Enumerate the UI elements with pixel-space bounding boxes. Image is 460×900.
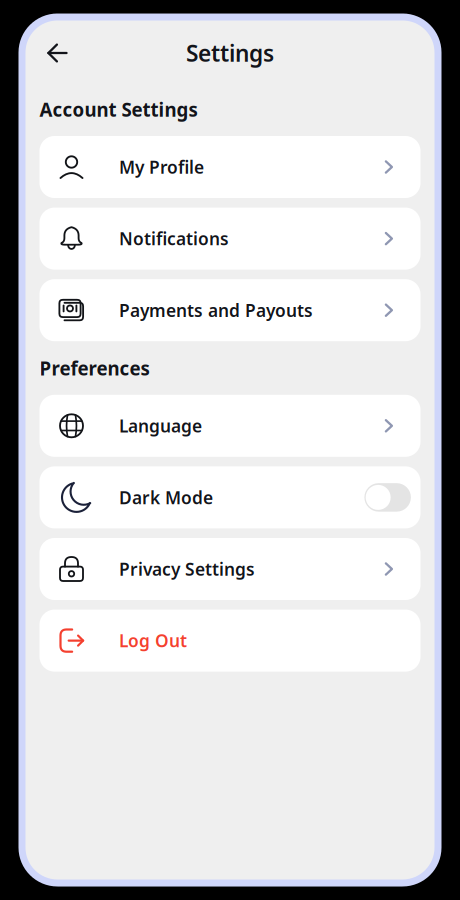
staticText: Settings [186, 38, 274, 68]
button[interactable]: Payments and Payouts [39, 279, 420, 341]
button[interactable]: Dark Mode [39, 466, 420, 528]
staticText: Dark Mode [119, 486, 213, 509]
staticText: Preferences [39, 356, 149, 381]
staticText: Account Settings [39, 97, 197, 122]
button[interactable]: Log Out [39, 610, 420, 672]
button[interactable]: Notifications [39, 208, 420, 270]
staticText: Log Out [119, 629, 187, 652]
button[interactable]: Language [39, 395, 420, 457]
staticText: Privacy Settings [119, 557, 255, 580]
staticText: My Profile [119, 155, 204, 178]
staticText: Notifications [119, 227, 229, 250]
staticText: Payments and Payouts [119, 299, 313, 322]
staticText: Language [119, 414, 202, 437]
button[interactable]: Privacy Settings [39, 538, 420, 600]
button[interactable]: My Profile [39, 136, 420, 198]
button[interactable]: Back [38, 34, 76, 72]
